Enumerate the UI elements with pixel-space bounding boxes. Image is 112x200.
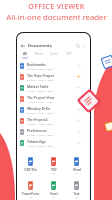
button[interactable]: Word: [32, 52, 46, 59]
button[interactable]: More options: [81, 43, 87, 49]
staticText: Whiskey Drills: [27, 106, 51, 111]
staticText: PDF: [66, 52, 72, 56]
staticText: Market Table: [27, 84, 49, 89]
staticText: 2.4 MB • 10.03 • 2mb: [27, 100, 53, 103]
button[interactable]: Market Table: [17, 82, 90, 93]
staticText: 2.4 MB • 10.03 • 2mb: [27, 144, 53, 147]
staticText: Excel: [50, 52, 58, 56]
staticText: The Keys Project: [27, 73, 55, 78]
staticText: Text: [73, 192, 80, 196]
staticText: 2.4 MB • 10.03 • 2mb: [27, 133, 53, 136]
staticText: 2.4 MB • 10.03 • 2mb: [27, 122, 53, 125]
button[interactable]: All: [18, 52, 32, 59]
staticText: 2.4 MB • 10.03 • 2mb: [27, 67, 53, 70]
staticText: Bookmarks: [27, 62, 46, 67]
staticText: 2.4 MB • 10.03 • 2mb: [27, 89, 53, 92]
staticText: 2.4 MB • 10.03 • 2mb: [27, 78, 53, 81]
button[interactable]: Bookmarks: [17, 60, 90, 71]
staticText: Documents: [28, 43, 52, 49]
button[interactable]: The Keys Project: [17, 71, 90, 82]
button[interactable]: Back: [20, 43, 26, 49]
button[interactable]: Trilateriligs: [17, 137, 90, 148]
button[interactable]: PowerPoint: [19, 181, 42, 199]
button[interactable]: Whiskey Drills: [17, 104, 90, 115]
staticText: Excel: [50, 192, 58, 196]
button[interactable]: The Project View: [17, 93, 90, 104]
button[interactable]: PDF: [61, 52, 76, 59]
staticText: 2.1: [75, 172, 79, 175]
staticText: OFFICE VIEWER: [28, 2, 85, 12]
staticText: 2.1: [29, 196, 33, 199]
button[interactable]: Text: [65, 181, 88, 199]
staticText: 2.1: [52, 196, 56, 199]
staticText: All: [23, 52, 28, 56]
staticText: 2.1: [75, 196, 79, 199]
staticText: The Project View: [27, 95, 55, 100]
button[interactable]: PDF: [42, 157, 65, 175]
button[interactable]: The Project2: [17, 115, 90, 126]
button[interactable]: Search: [75, 43, 81, 49]
staticText: Trilateriligs: [27, 139, 46, 144]
staticText: ODT/File: [24, 168, 37, 172]
staticText: Word: [73, 168, 81, 172]
staticText: The Project2: [27, 117, 48, 122]
button[interactable]: Excel: [42, 181, 65, 199]
staticText: 2.4 MB • 10.03 • 2mb: [27, 111, 53, 114]
button[interactable]: ODT/File: [19, 157, 42, 175]
button[interactable]: Excel: [46, 52, 61, 59]
staticText: 2.1: [52, 172, 56, 175]
staticText: PowerPoint: [22, 192, 39, 196]
button[interactable]: Word: [65, 157, 88, 175]
button[interactable]: Preferences: [17, 126, 90, 137]
staticText: All-in-one document reader: [6, 12, 107, 23]
staticText: 2.1: [29, 172, 33, 175]
staticText: Word: [35, 52, 44, 56]
staticText: PDF: [51, 168, 57, 172]
staticText: Preferences: [27, 128, 47, 133]
